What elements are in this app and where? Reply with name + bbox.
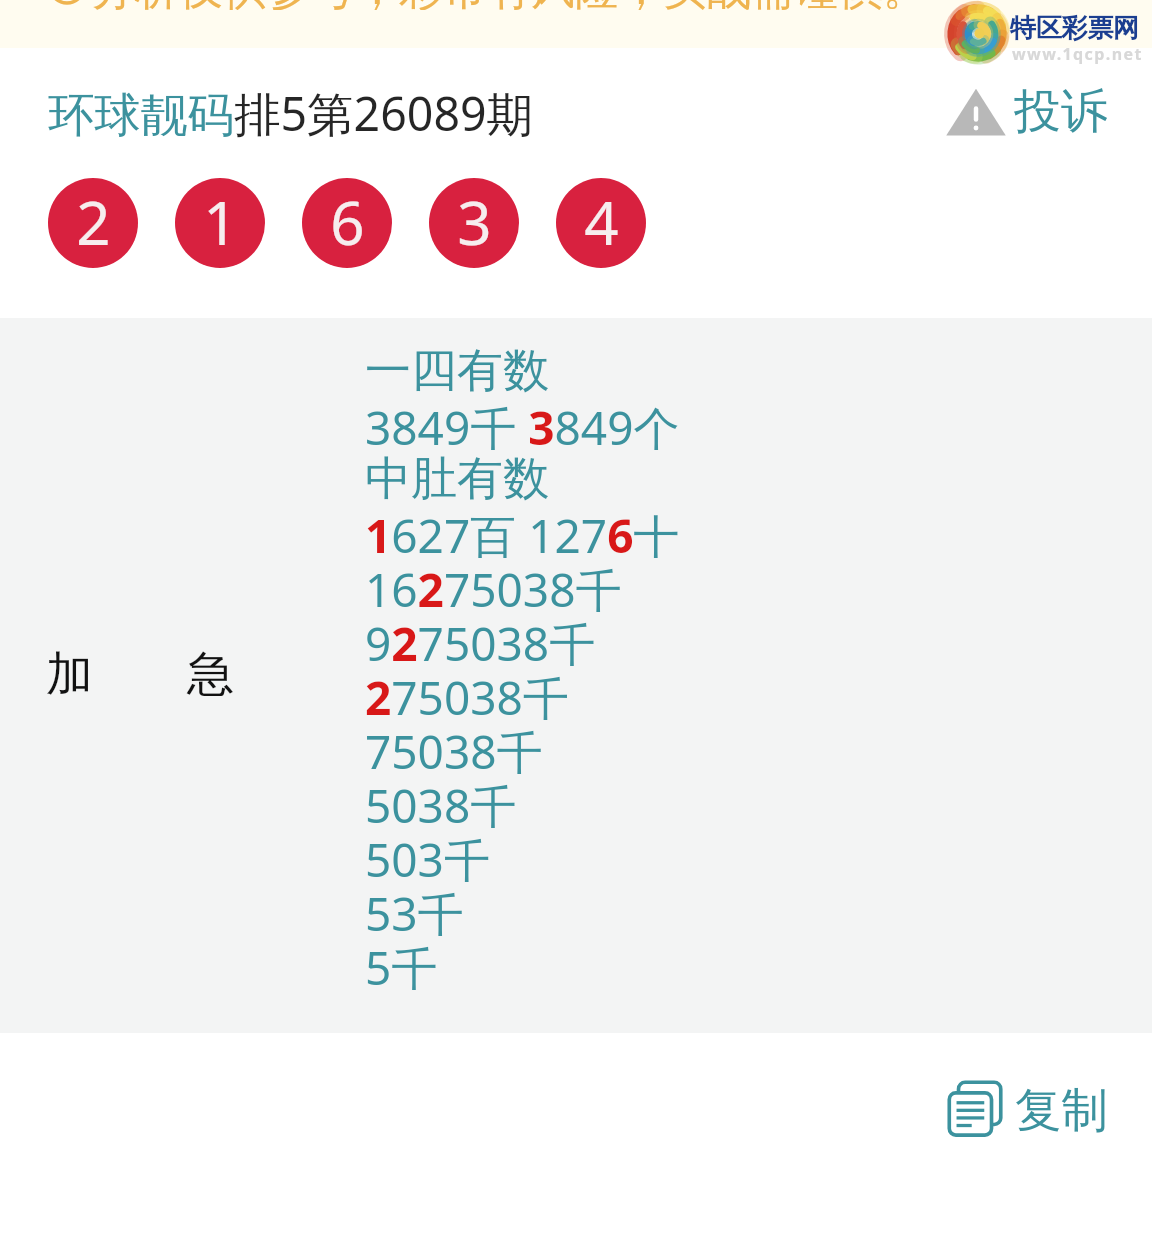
button[interactable]: 4 [556, 178, 646, 268]
staticText: 53千 [365, 882, 464, 936]
staticText: 一四有数 [365, 342, 549, 396]
staticText: 6 [330, 181, 365, 263]
staticText: 环球靓码排5第26089期 [48, 81, 534, 145]
staticText: 275038千 [365, 666, 569, 720]
other: 复制 [944, 1077, 1010, 1143]
staticText: 16275038千 [365, 558, 622, 612]
button[interactable]: 复制 [944, 1077, 1108, 1143]
staticText: 5038千 [365, 774, 517, 828]
staticText: www.1qcp.net [1012, 43, 1143, 65]
staticText: 9275038千 [365, 612, 596, 666]
staticText: 中肚有数 [365, 450, 549, 504]
button[interactable] [0, 318, 1152, 1033]
staticText: 特区彩票网 [1010, 12, 1139, 45]
button[interactable]: 3 [429, 178, 519, 268]
staticText: 1627百 1276十 [365, 504, 680, 558]
button[interactable]: 加 [46, 645, 234, 704]
staticText: 分析仅供参考，彩市有风险，实战需谨慎。 [91, 0, 927, 10]
staticText: 503千 [365, 828, 490, 882]
staticText: 5千 [365, 936, 438, 990]
button[interactable]: 6 [302, 178, 392, 268]
staticText: 复制 [1015, 1081, 1108, 1140]
button[interactable]: 1 [175, 178, 265, 268]
staticText: 1 [203, 181, 238, 263]
staticText: 3 [457, 181, 492, 263]
staticText: 急 [187, 645, 234, 704]
staticText: 3849千 3849个 [365, 396, 680, 450]
button[interactable]: 环球靓码排5第26089期 [48, 81, 534, 145]
other: 投诉 [944, 83, 1008, 141]
staticText: 2 [76, 181, 111, 263]
staticText: 投诉 [1014, 82, 1108, 141]
button[interactable]: 投诉 [944, 82, 1108, 141]
button[interactable]: 2 [48, 178, 138, 268]
staticText: 加 [46, 645, 93, 704]
staticText: 75038千 [365, 720, 543, 774]
staticText: 4 [584, 181, 619, 263]
